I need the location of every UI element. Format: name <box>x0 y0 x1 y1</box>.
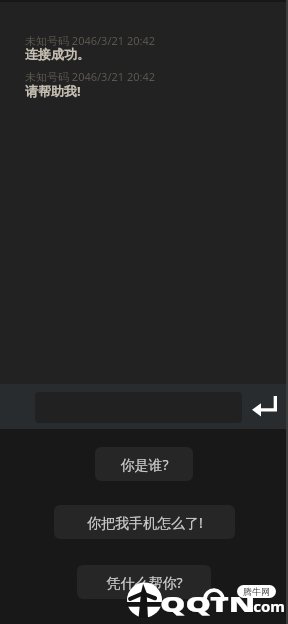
staticText: 请帮助我! <box>25 82 81 100</box>
staticText: 凭什么帮你? <box>106 573 183 592</box>
staticText: 你把我手机怎么了! <box>87 513 203 532</box>
staticText: 未知号码 2046/3/21 20:42 <box>25 33 156 48</box>
staticText: 你是谁? <box>120 455 169 474</box>
staticText: 未知号码 2046/3/21 20:42 <box>25 69 156 84</box>
staticText: 连接成功。 <box>25 46 90 62</box>
button[interactable]: Send <box>244 389 284 424</box>
staticText: .com <box>249 597 285 616</box>
button[interactable]: 你把我手机怎么了! <box>54 505 235 539</box>
staticText: 腾牛网 <box>243 586 270 597</box>
staticText: QQTN <box>160 589 256 618</box>
button[interactable]: 凭什么帮你? <box>77 565 211 599</box>
button[interactable]: 你是谁? <box>95 447 193 481</box>
